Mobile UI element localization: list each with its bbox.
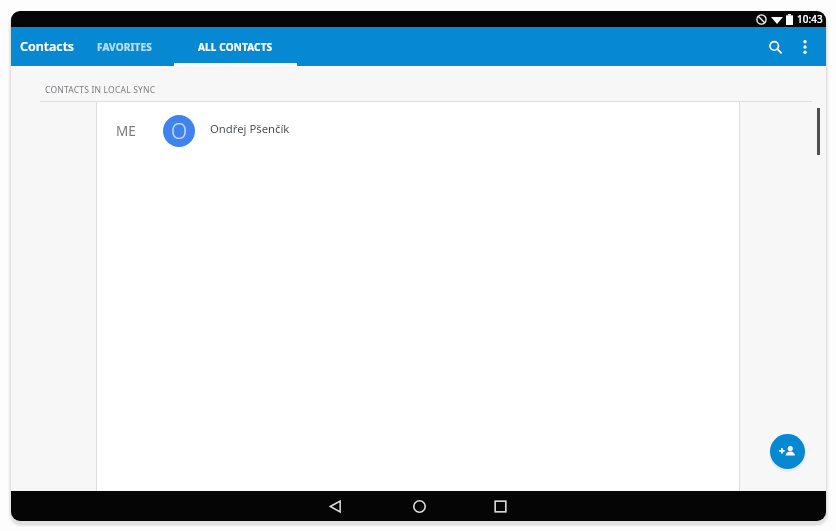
staticText: CONTACTS IN LOCAL SYNC (45, 84, 156, 96)
button[interactable]: Back (322, 493, 348, 519)
staticText: ME (116, 122, 136, 140)
staticText: FAVORITES (97, 40, 152, 54)
button[interactable]: Search (764, 36, 786, 58)
button[interactable]: ME (97, 102, 739, 160)
staticText: 10:43 (797, 12, 823, 26)
staticText: ALL CONTACTS (198, 40, 273, 54)
button[interactable]: Add contact (770, 434, 805, 469)
staticText: O (171, 117, 188, 146)
button[interactable]: FAVORITES (97, 27, 152, 66)
staticText: Contacts (20, 38, 74, 55)
button[interactable]: Home (406, 493, 432, 519)
button[interactable]: More options (794, 36, 816, 58)
button[interactable]: Recents (487, 493, 513, 519)
button[interactable]: ALL CONTACTS (174, 27, 297, 66)
staticText: Ondřej Pšenčík (210, 121, 290, 136)
